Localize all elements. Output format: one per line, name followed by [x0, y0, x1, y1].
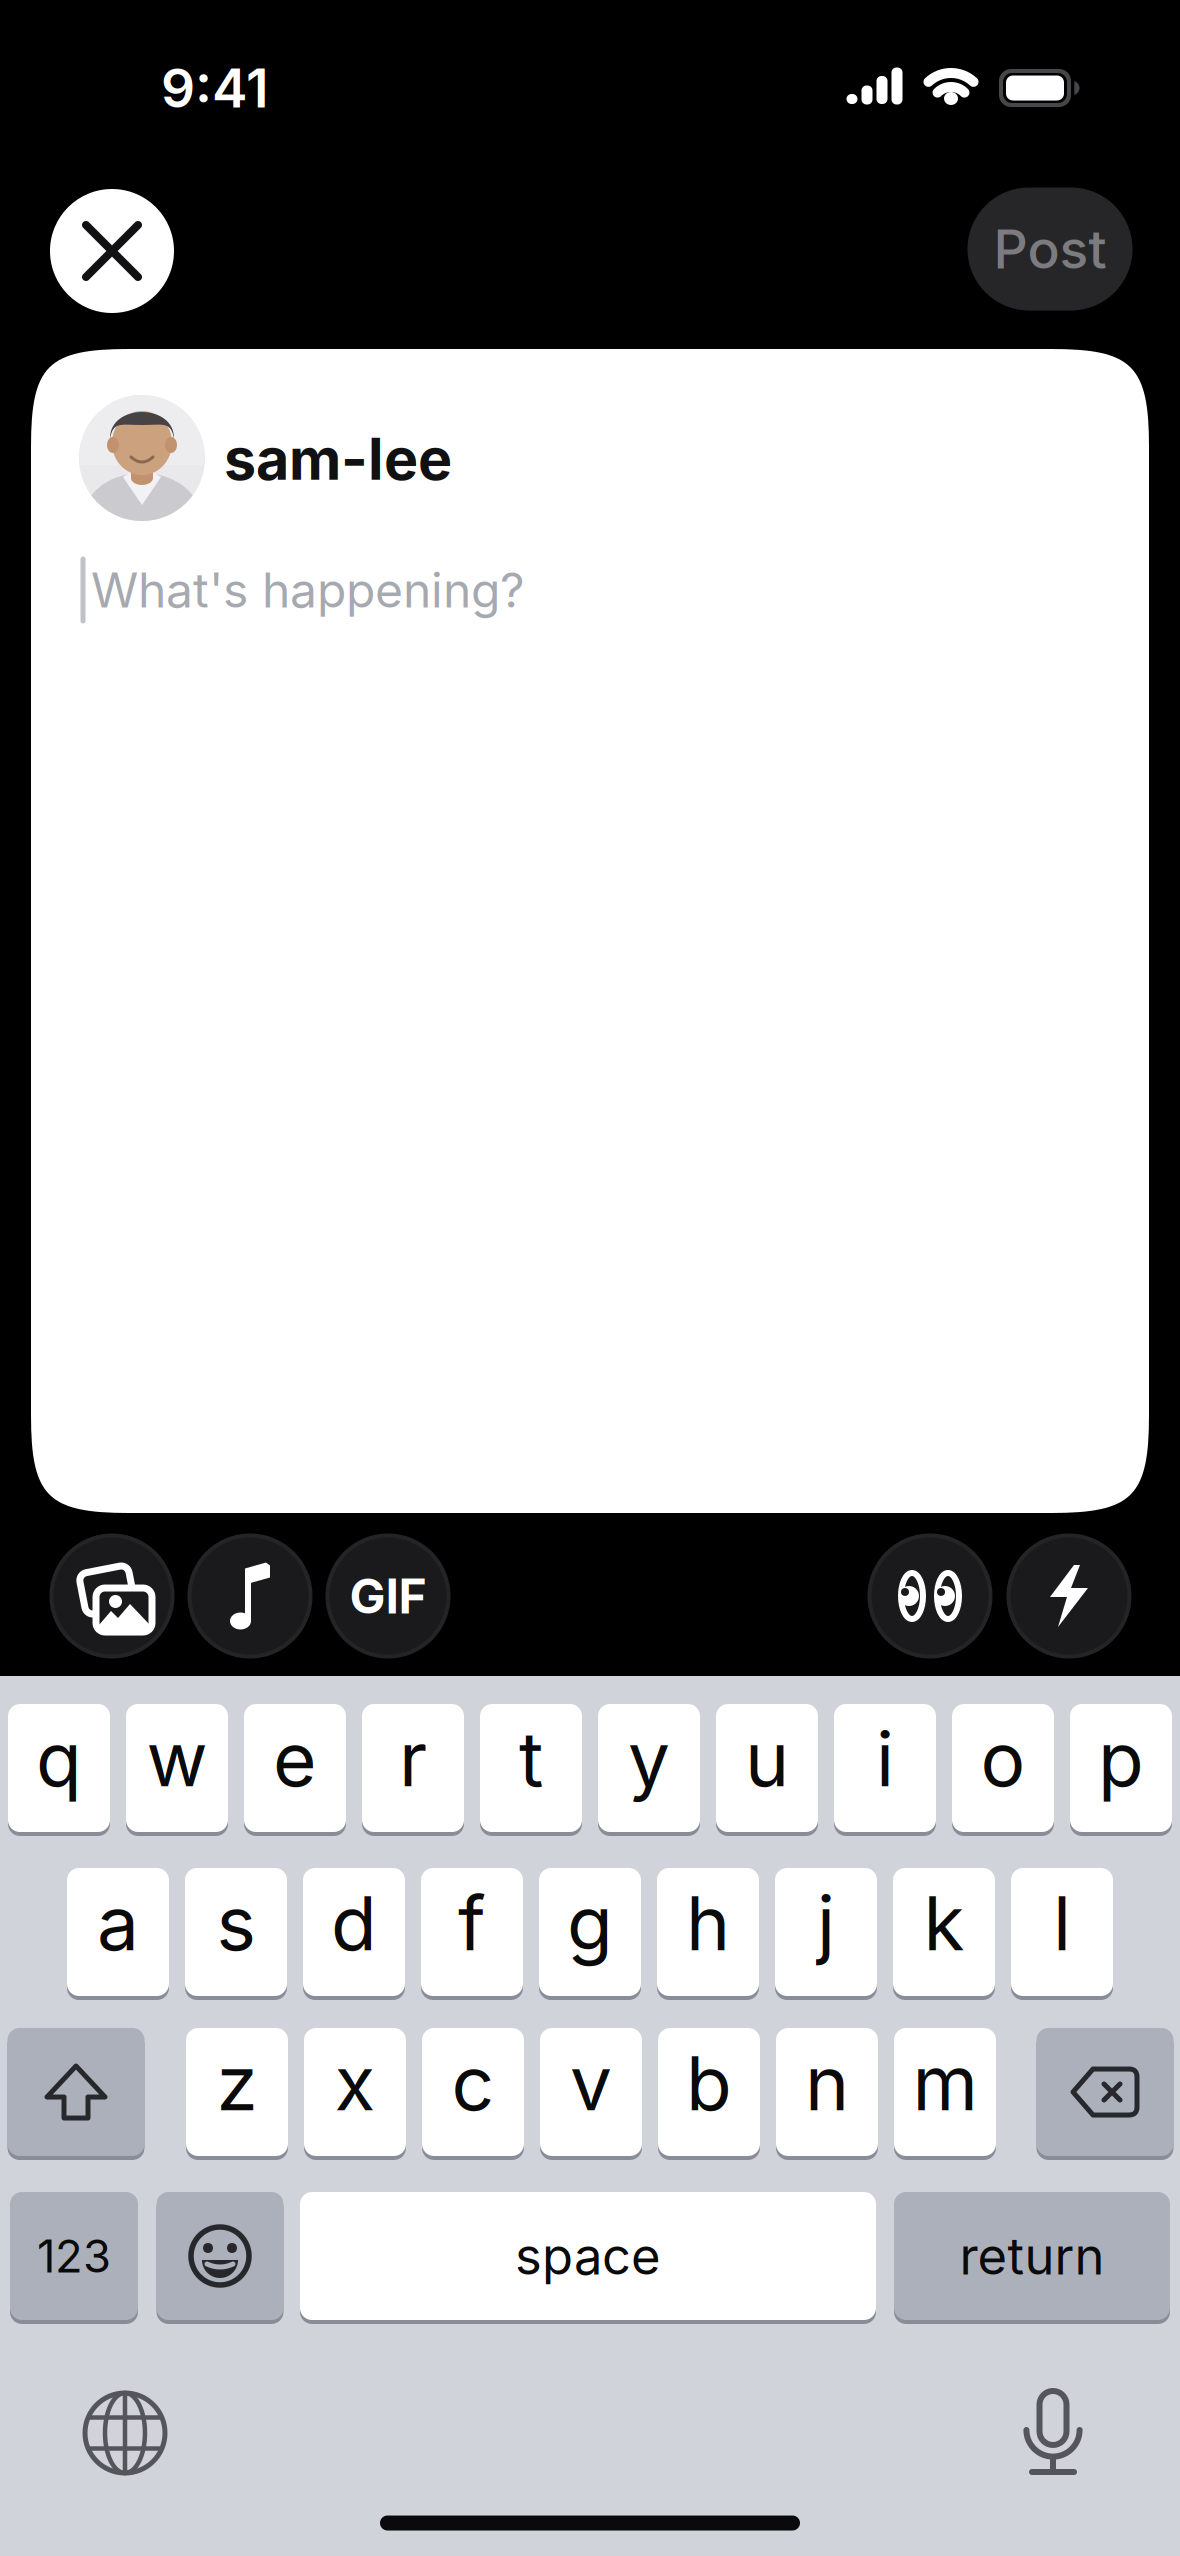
button[interactable]: l	[1011, 1866, 1113, 1998]
button[interactable]	[188, 1534, 312, 1658]
button[interactable]: w	[126, 1702, 228, 1834]
button[interactable]: g	[539, 1866, 641, 1998]
staticText: f	[458, 1879, 486, 1967]
button[interactable]: r	[362, 1702, 464, 1834]
button[interactable]: Post	[967, 187, 1132, 310]
button[interactable]: u	[716, 1702, 818, 1834]
button[interactable]: p	[1070, 1702, 1172, 1834]
button[interactable]	[50, 1534, 174, 1658]
staticText: 123	[37, 2229, 111, 2283]
staticText: e	[273, 1715, 317, 1803]
button[interactable]: e	[244, 1702, 346, 1834]
staticText: i	[876, 1715, 894, 1803]
staticText: space	[515, 2226, 661, 2286]
staticText: k	[923, 1879, 964, 1967]
staticText: b	[686, 2039, 732, 2127]
staticText: u	[745, 1715, 789, 1803]
button[interactable]: o	[952, 1702, 1054, 1834]
staticText: d	[331, 1879, 377, 1967]
staticText: sam-lee	[224, 425, 452, 493]
button[interactable]: space	[300, 2190, 876, 2322]
button[interactable]	[7, 2026, 144, 2158]
button[interactable]: h	[657, 1866, 759, 1998]
staticText: Post	[993, 217, 1106, 280]
staticText: o	[980, 1715, 1025, 1803]
button[interactable]: i	[834, 1702, 936, 1834]
staticText: q	[36, 1715, 82, 1803]
button[interactable]: 123	[10, 2190, 138, 2322]
staticText: g	[567, 1879, 613, 1967]
staticText: l	[1053, 1879, 1071, 1967]
button[interactable]	[82, 2390, 168, 2476]
staticText: j	[817, 1879, 835, 1967]
button[interactable]: q	[8, 1702, 110, 1834]
staticText: z	[216, 2039, 257, 2127]
button[interactable]: t	[480, 1702, 582, 1834]
button[interactable]: return	[894, 2190, 1170, 2322]
button[interactable]	[1007, 1534, 1131, 1658]
button[interactable]: n	[776, 2026, 878, 2158]
button[interactable]	[50, 189, 174, 313]
button[interactable]: k	[893, 1866, 995, 1998]
button[interactable]	[1036, 2026, 1173, 2158]
staticText: w	[146, 1715, 207, 1803]
staticText: y	[628, 1715, 670, 1803]
button[interactable]: c	[422, 2026, 524, 2158]
staticText: What's happening?	[91, 562, 525, 618]
button[interactable]: f	[421, 1866, 523, 1998]
button[interactable]: v	[540, 2026, 642, 2158]
staticText: GIF	[349, 1568, 426, 1624]
button[interactable]: s	[185, 1866, 287, 1998]
staticText: c	[451, 2039, 494, 2127]
staticText: p	[1098, 1715, 1144, 1803]
button[interactable]: z	[186, 2026, 288, 2158]
button[interactable]: j	[775, 1866, 877, 1998]
button[interactable]	[1023, 2391, 1083, 2477]
button[interactable]: m	[894, 2026, 996, 2158]
button[interactable]: b	[658, 2026, 760, 2158]
staticText: 9:41	[161, 56, 269, 119]
button[interactable]: a	[67, 1866, 169, 1998]
staticText: m	[912, 2039, 977, 2127]
button[interactable]: GIF	[326, 1534, 450, 1658]
staticText: return	[959, 2226, 1104, 2286]
staticText: h	[686, 1879, 730, 1967]
staticText: r	[399, 1715, 427, 1803]
button[interactable]: d	[303, 1866, 405, 1998]
staticText: a	[97, 1879, 139, 1967]
button[interactable]: y	[598, 1702, 700, 1834]
staticText: s	[216, 1879, 255, 1967]
staticText: x	[334, 2039, 375, 2127]
staticText: v	[570, 2039, 612, 2127]
button[interactable]	[156, 2190, 283, 2322]
staticText: t	[519, 1715, 543, 1803]
button[interactable]	[868, 1534, 992, 1658]
staticText: n	[805, 2039, 849, 2127]
button[interactable]: x	[304, 2026, 406, 2158]
